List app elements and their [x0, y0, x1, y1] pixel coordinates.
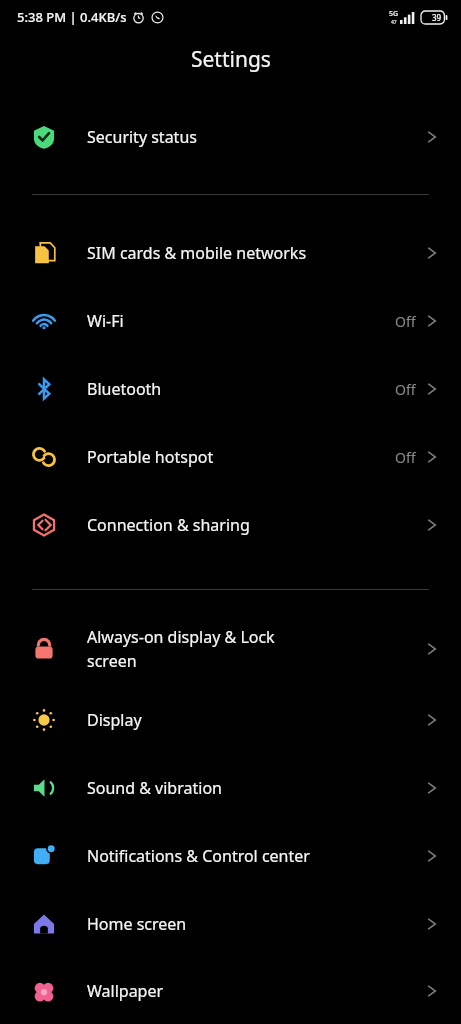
button[interactable]: SIM cards & mobile networks: [0, 219, 461, 287]
button[interactable]: Notifications & Control center: [0, 822, 461, 890]
button[interactable]: Always-on display & Lock screen: [0, 612, 461, 686]
staticText: Home screen: [87, 913, 187, 935]
staticText: SIM cards & mobile networks: [87, 242, 307, 264]
staticText: Bluetooth: [87, 378, 162, 400]
staticText: Notifications & Control center: [87, 845, 310, 867]
staticText: Wi-Fi: [87, 310, 124, 332]
staticText: 47: [391, 19, 397, 26]
staticText: Portable hotspot: [87, 446, 214, 468]
button[interactable]: Home screen: [0, 890, 461, 958]
staticText: Security status: [87, 126, 197, 148]
staticText: Display: [87, 709, 142, 731]
staticText: 5G: [389, 9, 399, 19]
button[interactable]: Sound & vibration: [0, 754, 461, 822]
staticText: 39: [432, 12, 442, 23]
button[interactable]: Display: [0, 686, 461, 754]
button[interactable]: Bluetooth: [0, 355, 461, 423]
staticText: Connection & sharing: [87, 514, 250, 536]
staticText: Always-on display & Lock screen: [87, 626, 275, 672]
button[interactable]: Wallpaper: [0, 958, 461, 1024]
button[interactable]: Security status: [0, 106, 461, 168]
staticText: Off: [395, 448, 416, 467]
staticText: Settings: [191, 45, 271, 74]
button[interactable]: Connection & sharing: [0, 491, 461, 559]
button[interactable]: Portable hotspot: [0, 423, 461, 491]
staticText: 5:38 PM | 0.4KB/s: [17, 8, 127, 26]
staticText: Off: [395, 312, 416, 331]
button[interactable]: Wi-Fi: [0, 287, 461, 355]
staticText: Wallpaper: [87, 980, 164, 1002]
staticText: Sound & vibration: [87, 777, 222, 799]
staticText: Off: [395, 380, 416, 399]
